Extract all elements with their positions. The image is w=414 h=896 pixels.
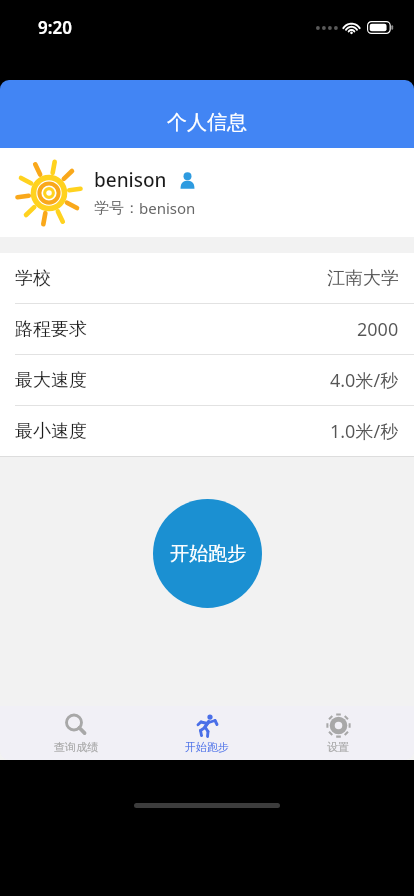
staticText: 学校 — [15, 267, 51, 290]
staticText: 个人信息 — [167, 110, 247, 135]
staticText: 学号： — [94, 199, 139, 218]
staticText: 开始跑步 — [170, 542, 246, 566]
staticText: benison — [139, 198, 196, 218]
staticText: 查询成绩 — [54, 740, 98, 754]
button[interactable]: 最小速度 — [0, 406, 414, 456]
button[interactable]: 路程要求 — [0, 304, 414, 354]
staticText: 路程要求 — [15, 318, 87, 341]
other: Profile — [179, 172, 196, 189]
button[interactable]: 开始跑步 — [152, 706, 262, 760]
staticText: benison — [94, 167, 167, 193]
staticText: 最大速度 — [15, 369, 87, 392]
staticText: 9:20 — [38, 16, 72, 39]
staticText: 2000 — [357, 317, 399, 342]
button[interactable]: 设置 — [283, 706, 393, 760]
staticText: 最小速度 — [15, 420, 87, 443]
staticText: 江南大学 — [327, 267, 399, 290]
button[interactable]: benison — [0, 148, 414, 237]
staticText: 4.0米/秒 — [330, 368, 399, 393]
button[interactable]: 开始跑步 — [153, 499, 262, 608]
staticText: 设置 — [327, 740, 349, 754]
button[interactable]: 学校 — [0, 253, 414, 303]
button[interactable]: 查询成绩 — [21, 706, 131, 760]
staticText: 1.0米/秒 — [330, 419, 399, 444]
staticText: 开始跑步 — [185, 740, 229, 754]
button[interactable]: 最大速度 — [0, 355, 414, 405]
